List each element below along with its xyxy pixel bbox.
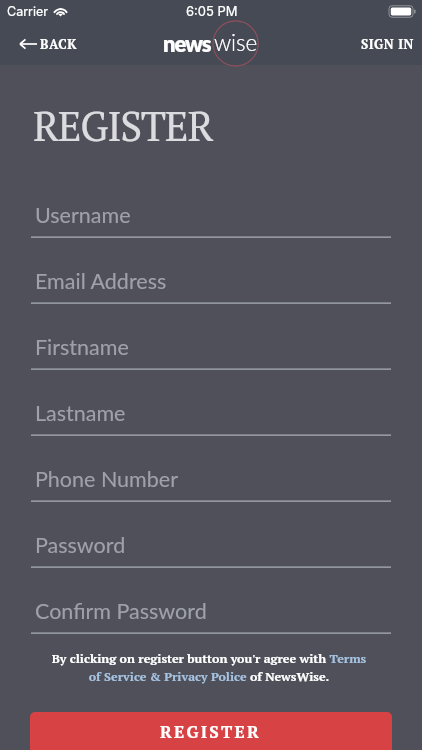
staticText: Phone Number [35,466,178,492]
staticText: 6:05 PM [186,3,238,19]
staticText: Firstname [35,334,129,360]
button[interactable]: Lastname [31,387,391,437]
staticText: Password [35,532,126,558]
staticText: Carrier [7,4,48,19]
button[interactable]: SIGN IN [357,29,418,58]
staticText: Confirm Password [35,598,207,624]
staticText: REGISTER [160,720,262,743]
staticText: news [163,30,211,56]
staticText: wise [214,29,258,56]
other: Back [19,37,37,51]
button[interactable]: REGISTER [30,712,392,750]
other: Battery [389,5,416,18]
button[interactable]: Password [31,519,391,569]
button[interactable]: Firstname [31,321,391,371]
button[interactable]: Email Address [31,255,391,305]
staticText: Username [35,202,131,228]
button[interactable]: By clicking on register button you'r agr… [48,650,370,685]
staticText: REGISTER [33,98,213,152]
button[interactable]: Phone Number [31,453,391,503]
button[interactable]: Confirm Password [31,585,391,635]
staticText: Lastname [35,400,126,426]
button[interactable]: Back [15,29,81,58]
button[interactable]: Username [31,189,391,239]
other: Wi-Fi [53,6,68,17]
staticText: BACK [40,35,77,52]
staticText: Email Address [35,268,167,294]
staticText: SIGN IN [361,35,414,52]
staticText: By clicking on register button you'r agr… [48,650,370,685]
